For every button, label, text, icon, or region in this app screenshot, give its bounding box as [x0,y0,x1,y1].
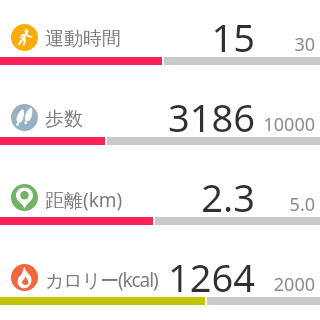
button[interactable]: Calories [0,240,320,320]
button[interactable]: Distance [11,184,38,211]
staticText: カロリー(kcal) [45,267,158,293]
staticText: 30 [255,32,315,57]
staticText: 10000 [255,112,315,137]
button[interactable]: Exercise time [0,0,320,80]
staticText: 3186 [135,91,255,143]
button[interactable]: Calories [11,264,38,291]
button[interactable]: Steps [11,104,38,131]
staticText: 15 [135,11,255,63]
button[interactable]: Steps [0,80,320,160]
staticText: 運動時間 [45,27,121,51]
staticText: 距離(km) [45,187,123,213]
staticText: 2.3 [135,171,255,223]
staticText: 5.0 [255,192,315,217]
button[interactable]: Distance [0,160,320,240]
staticText: 2000 [255,272,315,297]
button[interactable]: Exercise time [11,24,38,51]
staticText: 歩数 [45,107,83,131]
staticText: 1264 [135,251,255,303]
